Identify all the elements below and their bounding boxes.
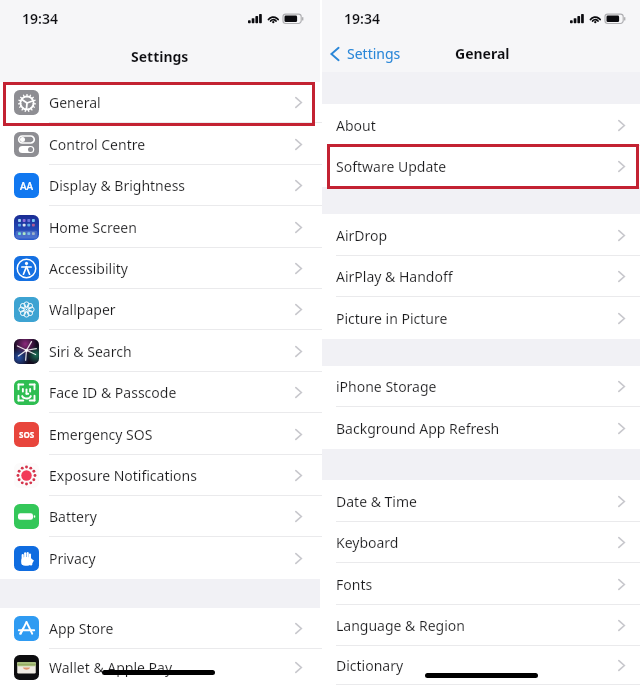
button[interactable]: General [0, 82, 320, 123]
staticText: AirPlay & Handoff [336, 267, 453, 286]
staticText: Home Screen [49, 218, 137, 237]
staticText: Display & Brightness [49, 176, 186, 195]
button[interactable]: Privacy [0, 537, 320, 579]
button[interactable]: Wallet & Apple Pay [0, 649, 320, 685]
button[interactable]: Accessibility [0, 248, 320, 289]
staticText: Background App Refresh [336, 419, 500, 438]
button[interactable]: AA [0, 165, 320, 206]
button[interactable]: Control Centre [0, 123, 320, 165]
button[interactable]: SOS [0, 413, 320, 455]
button[interactable]: Face ID & Passcode [0, 372, 320, 413]
button[interactable]: Dictionary [322, 646, 640, 685]
staticText: Fonts [336, 575, 373, 594]
staticText: Exposure Notifications [49, 466, 197, 485]
staticText: General [49, 93, 101, 112]
staticText: Picture in Picture [336, 309, 448, 328]
staticText: About [336, 116, 376, 135]
staticText: App Store [49, 619, 114, 638]
button[interactable]: Background App Refresh [322, 407, 640, 449]
staticText: Software Update [336, 157, 447, 176]
staticText: iPhone Storage [336, 377, 437, 396]
button[interactable]: Keyboard [322, 522, 640, 563]
staticText: Accessibility [49, 259, 128, 278]
button[interactable]: AirPlay & Handoff [322, 256, 640, 297]
button[interactable]: Fonts [322, 563, 640, 605]
button[interactable]: AirDrop [322, 214, 640, 256]
button[interactable]: Siri & Search [0, 330, 320, 372]
staticText: AirDrop [336, 226, 388, 245]
button[interactable]: Picture in Picture [322, 297, 640, 339]
staticText: Settings [131, 47, 189, 66]
button[interactable]: Language & Region [322, 605, 640, 646]
staticText: 19:34 [344, 9, 380, 28]
staticText: Face ID & Passcode [49, 383, 177, 402]
staticText: Dictionary [336, 656, 404, 675]
staticText: Control Centre [49, 135, 146, 154]
staticText: SOS [19, 429, 35, 440]
button[interactable]: About [322, 104, 640, 146]
staticText: Emergency SOS [49, 425, 153, 444]
button[interactable]: Battery [0, 496, 320, 537]
button[interactable]: Software Update [322, 146, 640, 187]
staticText: Keyboard [336, 533, 399, 552]
staticText: Settings [347, 44, 401, 63]
button[interactable]: Back to Settings [330, 44, 401, 63]
staticText: Date & Time [336, 492, 417, 511]
staticText: Battery [49, 507, 97, 526]
staticText: Siri & Search [49, 342, 132, 361]
staticText: Language & Region [336, 616, 465, 635]
button[interactable]: App Store [0, 608, 320, 649]
staticText: AA [20, 179, 34, 193]
button[interactable]: Exposure Notifications [0, 455, 320, 496]
staticText: Wallpaper [49, 300, 116, 319]
button[interactable]: Wallpaper [0, 289, 320, 330]
staticText: Privacy [49, 549, 96, 568]
staticText: 19:34 [22, 9, 58, 28]
staticText: General [455, 44, 510, 63]
button[interactable]: Home Screen [0, 206, 320, 248]
staticText: Wallet & Apple Pay [49, 658, 173, 677]
button[interactable]: iPhone Storage [322, 366, 640, 407]
button[interactable]: Date & Time [322, 480, 640, 522]
